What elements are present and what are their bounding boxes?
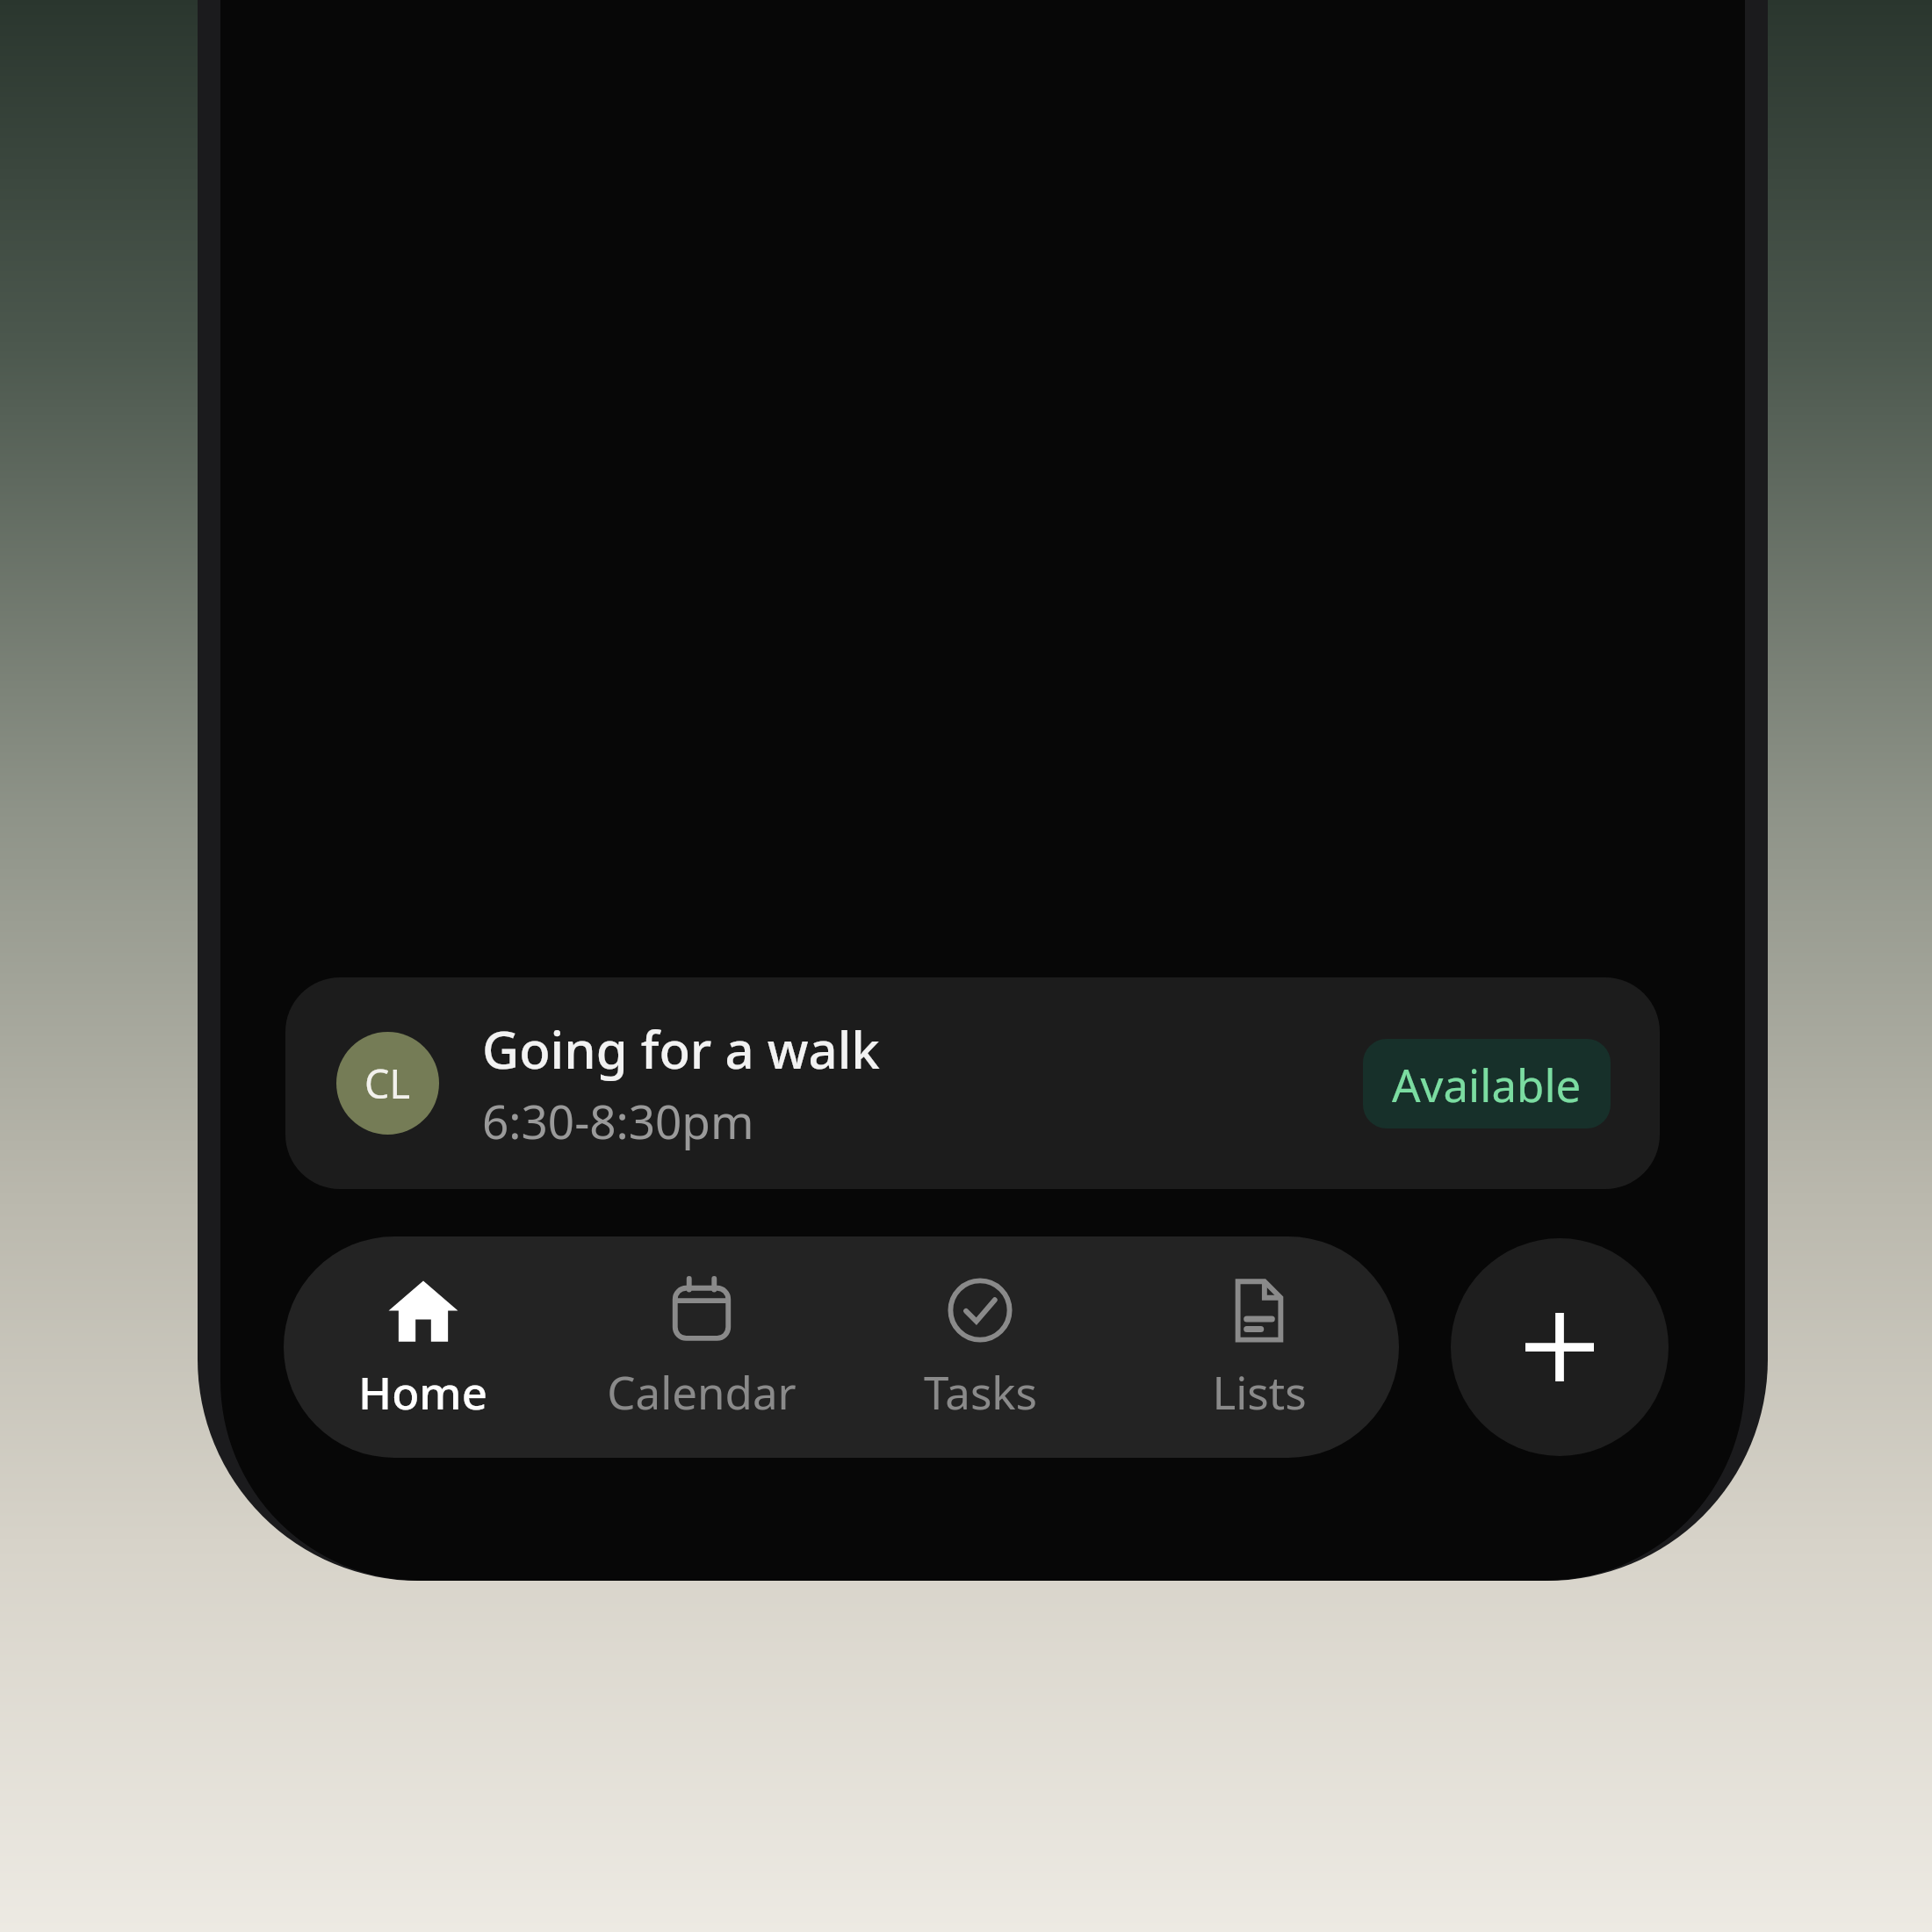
button[interactable]: Tasks — [840, 1236, 1120, 1458]
staticText: CL — [364, 1056, 411, 1110]
staticText: Calendar — [607, 1361, 797, 1422]
staticText: Tasks — [924, 1361, 1037, 1422]
button[interactable]: Available — [1363, 1039, 1611, 1128]
staticText: Going for a walk — [482, 1014, 880, 1084]
staticText: Home — [358, 1361, 487, 1422]
staticText: 6:30-8:30pm — [482, 1089, 754, 1152]
staticText: Lists — [1212, 1361, 1307, 1422]
button[interactable]: Add — [1451, 1238, 1669, 1456]
button[interactable]: Calendar — [562, 1236, 840, 1458]
button[interactable]: Lists — [1120, 1236, 1399, 1458]
button[interactable]: CL — [285, 977, 1660, 1189]
staticText: Available — [1392, 1054, 1582, 1114]
button[interactable]: Home — [284, 1236, 562, 1458]
